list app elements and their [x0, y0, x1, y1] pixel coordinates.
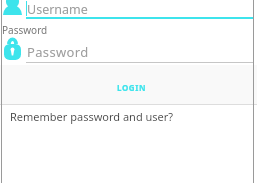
- staticText: LOGIN: [117, 82, 147, 93]
- staticText: Remember password and user?: [10, 109, 174, 124]
- staticText: Password: [2, 23, 48, 37]
- button[interactable]: Remember password and user?: [0, 105, 257, 131]
- button[interactable]: Password: [0, 34, 257, 64]
- button[interactable]: LOGIN: [0, 65, 257, 105]
- staticText: Username: [27, 1, 88, 18]
- other: Password: [4, 37, 21, 60]
- other: User account: [3, 0, 22, 15]
- button[interactable]: User account: [0, 0, 257, 20]
- staticText: Password: [27, 43, 89, 61]
